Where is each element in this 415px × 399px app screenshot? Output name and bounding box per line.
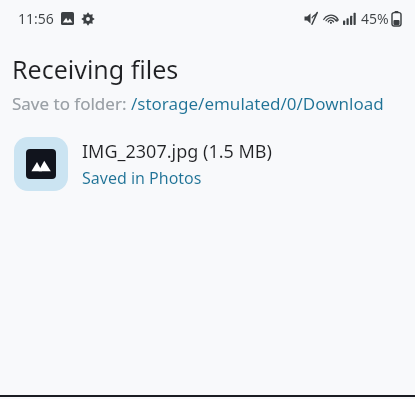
staticText: Saved in Photos <box>82 167 202 189</box>
staticText: Save to folder: /storage/emulated/0/Down… <box>12 92 384 115</box>
staticText: IMG_2307.jpg (1.5 MB) <box>82 139 272 164</box>
staticText: Receiving files <box>12 52 179 86</box>
staticText: 45% <box>361 9 389 28</box>
staticText: 11:56 <box>18 9 54 28</box>
button[interactable]: IMG_2307.jpg (1.5 MB) <box>0 137 415 191</box>
